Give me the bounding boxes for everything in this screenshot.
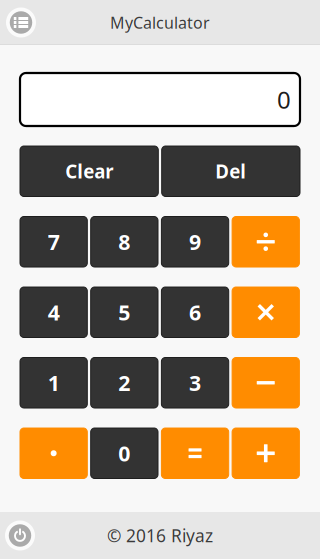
- button[interactable]: Clear: [20, 146, 158, 196]
- button[interactable]: 2: [91, 357, 158, 408]
- button[interactable]: Menu: [4, 5, 38, 39]
- staticText: © 2016 Riyaz: [107, 524, 213, 547]
- button[interactable]: 8: [91, 216, 158, 267]
- button[interactable]: [232, 357, 299, 408]
- button[interactable]: 7: [20, 216, 87, 267]
- staticText: 7: [48, 228, 60, 256]
- button[interactable]: 1: [20, 357, 87, 408]
- staticText: 0: [118, 439, 130, 467]
- button[interactable]: 4: [20, 287, 87, 337]
- button[interactable]: Del: [162, 146, 300, 196]
- staticText: 3: [189, 369, 201, 397]
- staticText: 2: [118, 369, 130, 397]
- staticText: MyCalculator: [110, 12, 210, 33]
- staticText: 0: [277, 84, 291, 115]
- button[interactable]: 3: [161, 357, 229, 408]
- button[interactable]: 0: [91, 428, 158, 478]
- button[interactable]: [20, 428, 87, 478]
- staticText: 9: [189, 228, 201, 256]
- button[interactable]: 6: [161, 287, 229, 337]
- button[interactable]: [161, 428, 229, 478]
- staticText: 1: [48, 369, 60, 397]
- staticText: 6: [189, 298, 201, 326]
- staticText: 5: [118, 298, 130, 326]
- button[interactable]: [232, 287, 299, 337]
- button[interactable]: 5: [91, 287, 158, 337]
- staticText: 8: [118, 228, 130, 256]
- staticText: 4: [48, 298, 60, 326]
- button[interactable]: [232, 428, 299, 478]
- button[interactable]: [232, 216, 299, 267]
- button[interactable]: Power: [3, 518, 37, 552]
- button[interactable]: 9: [161, 216, 229, 267]
- staticText: Del: [215, 159, 246, 184]
- staticText: Clear: [65, 159, 113, 184]
